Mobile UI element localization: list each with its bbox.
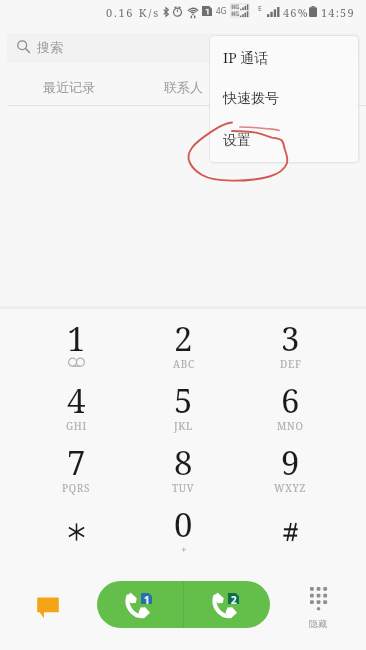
staticText: + (181, 543, 187, 557)
staticText: E (258, 4, 262, 14)
staticText: TUV (172, 481, 195, 495)
button[interactable]: 设置 (210, 120, 358, 162)
staticText: 4G (216, 5, 227, 16)
staticText: GHI (66, 419, 87, 433)
button[interactable]: Call with SIM 2 (184, 581, 270, 628)
button[interactable] (22, 502, 130, 564)
staticText: 2 (174, 316, 193, 361)
staticText: 最近记录 (43, 79, 95, 95)
staticText: 4 (67, 378, 86, 423)
button[interactable] (237, 502, 344, 564)
button[interactable]: 搜索 (7, 33, 359, 63)
button[interactable]: 2 (130, 316, 237, 378)
staticText: 3 (281, 316, 300, 361)
staticText: 设置 (223, 132, 251, 150)
button[interactable]: Call with SIM 1 (97, 581, 183, 628)
staticText: 6 (281, 378, 300, 423)
staticText: 搜索 (37, 39, 63, 55)
staticText: 隐藏 (309, 618, 327, 629)
button[interactable]: 联系人 (126, 68, 240, 106)
staticText: DEF (280, 357, 302, 371)
staticText: 0 (174, 502, 193, 547)
button[interactable]: 最近记录 (12, 68, 126, 106)
button[interactable]: 1 (22, 316, 130, 378)
staticText: 2 (231, 593, 237, 604)
staticText: 联系人 (164, 79, 203, 95)
staticText: JKL (174, 419, 193, 433)
button[interactable]: 群组 (240, 68, 354, 106)
staticText: PQRS (62, 481, 91, 495)
staticText: MNO (277, 419, 304, 433)
button[interactable]: 7 (22, 440, 130, 502)
staticText: 46% (283, 5, 309, 20)
staticText: 1 (67, 316, 86, 361)
staticText: WXYZ (274, 481, 307, 495)
button[interactable]: Messages (30, 589, 66, 625)
button[interactable]: 8 (130, 440, 237, 502)
button[interactable]: 9 (237, 440, 344, 502)
staticText: 1 (144, 593, 150, 604)
staticText: 14:59 (321, 5, 355, 20)
staticText: 快速拨号 (223, 90, 279, 108)
staticText: 8 (174, 440, 193, 485)
button[interactable]: 5 (130, 378, 237, 440)
staticText: 7 (67, 440, 86, 485)
button[interactable]: 3 (237, 316, 344, 378)
staticText: 5 (174, 378, 193, 423)
button[interactable]: 6 (237, 378, 344, 440)
staticText: ABC (173, 357, 195, 371)
button[interactable]: 隐藏 (294, 583, 342, 631)
button[interactable]: 快速拨号 (210, 78, 358, 120)
staticText: IP 通话 (223, 48, 269, 67)
button[interactable]: 0 (130, 502, 237, 564)
button[interactable]: 4 (22, 378, 130, 440)
button[interactable]: IP 通话 (210, 36, 358, 78)
staticText: 0.16 K/s (106, 5, 160, 20)
staticText: 9 (281, 440, 300, 485)
